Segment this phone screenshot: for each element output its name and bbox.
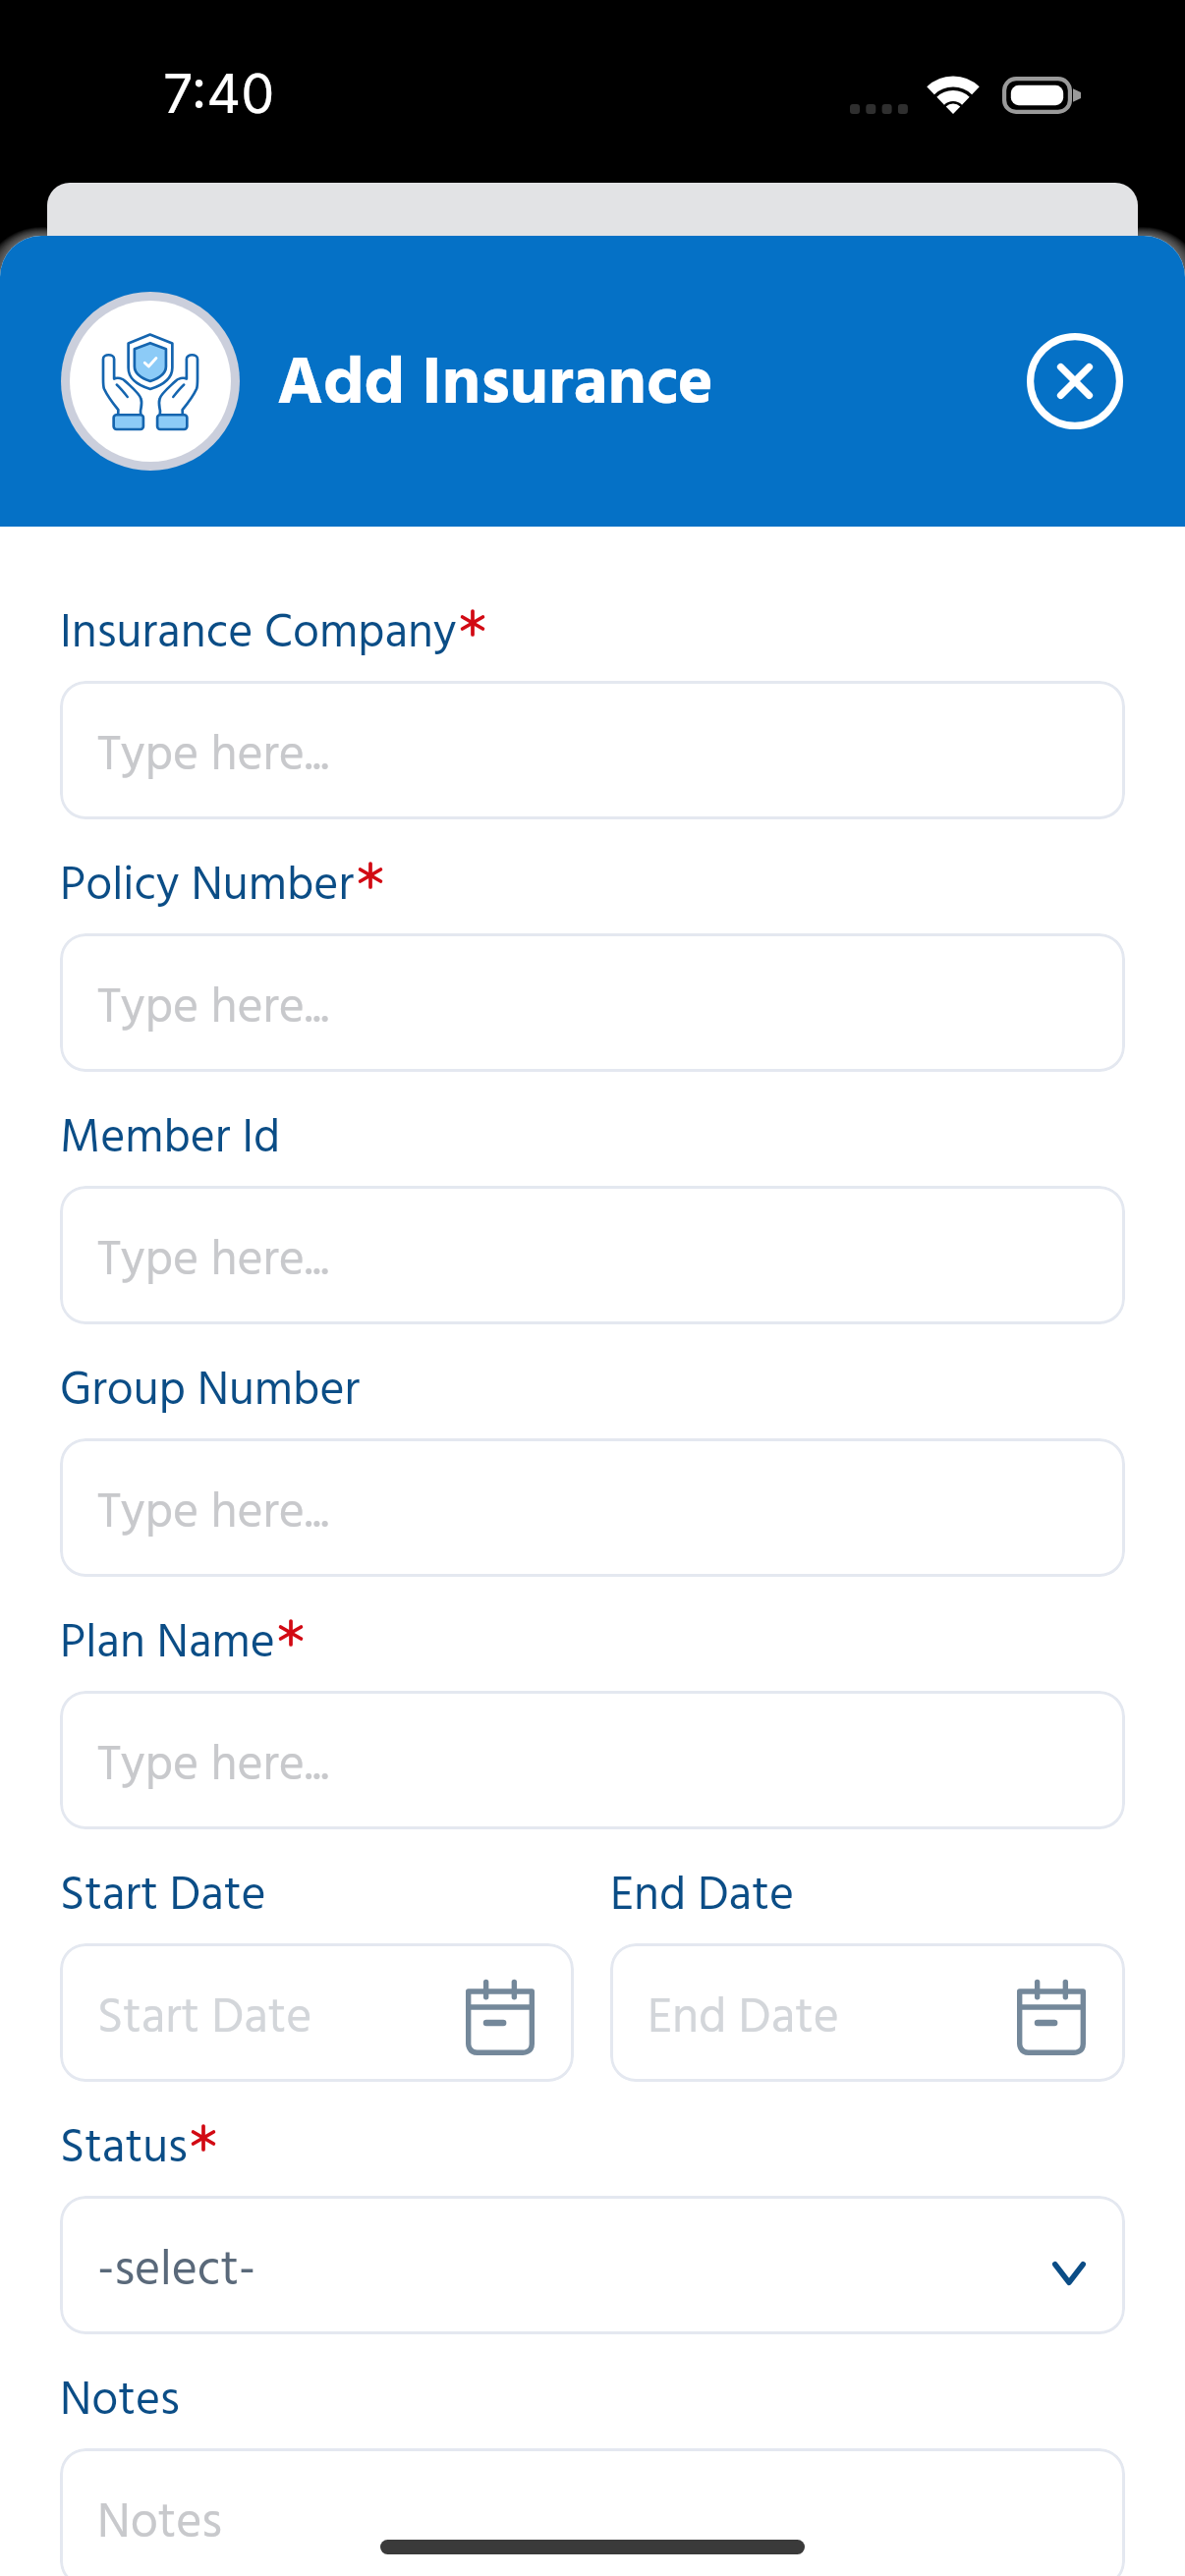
- button[interactable]: Type here...: [60, 1186, 1125, 1324]
- staticText: Policy Number: [60, 849, 355, 924]
- staticText: Insurance Company: [60, 596, 457, 672]
- staticText: Plan Name: [60, 1606, 275, 1682]
- button[interactable]: Start Date: [60, 1943, 574, 2082]
- button[interactable]: Type here...: [60, 1438, 1125, 1577]
- staticText: -select-: [97, 2232, 256, 2311]
- staticText: Group Number: [60, 1354, 361, 1429]
- button[interactable]: Close: [1026, 332, 1124, 430]
- staticText: Status: [60, 2111, 188, 2187]
- staticText: Notes: [97, 2485, 222, 2563]
- staticText: Type here...: [97, 970, 329, 1048]
- staticText: Add Insurance: [277, 332, 714, 439]
- button[interactable]: Notes: [60, 2448, 1125, 2576]
- staticText: 7:40: [163, 62, 275, 126]
- staticText: Start Date: [60, 1859, 266, 1934]
- button[interactable]: Type here...: [60, 1691, 1125, 1829]
- button[interactable]: Type here...: [60, 681, 1125, 819]
- button[interactable]: Type here...: [60, 933, 1125, 1072]
- staticText: Member Id: [60, 1101, 281, 1177]
- staticText: Type here...: [97, 1475, 329, 1553]
- button[interactable]: End Date: [610, 1943, 1125, 2082]
- button[interactable]: -select-: [60, 2196, 1125, 2334]
- staticText: Start Date: [97, 1980, 312, 2058]
- staticText: Type here...: [97, 1727, 329, 1806]
- staticText: Type here...: [97, 717, 329, 796]
- staticText: Notes: [60, 2364, 180, 2439]
- staticText: Type here...: [97, 1222, 329, 1301]
- staticText: End Date: [610, 1859, 795, 1934]
- staticText: End Date: [648, 1980, 839, 2058]
